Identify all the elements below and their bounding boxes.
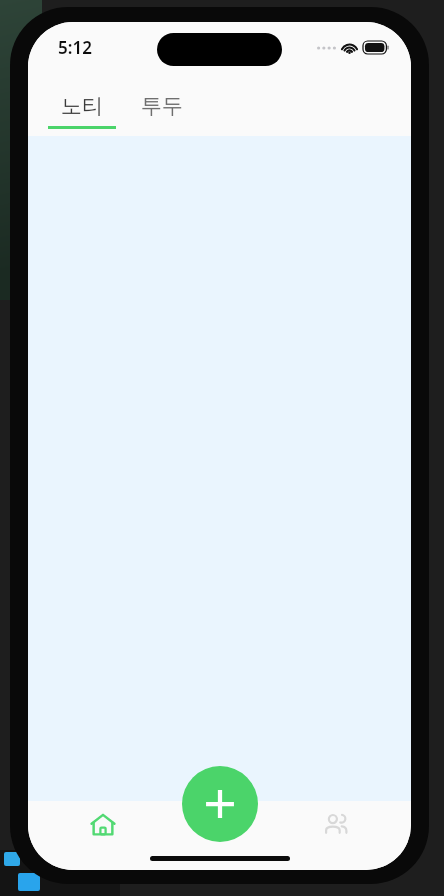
button[interactable]: Friends	[313, 802, 359, 848]
button[interactable]: Add	[182, 766, 258, 842]
staticText: 5:12	[58, 36, 92, 59]
staticText: 투두	[141, 93, 183, 119]
button[interactable]: 노티	[48, 87, 116, 136]
button[interactable]: Home	[80, 802, 126, 848]
button[interactable]: 투두	[128, 87, 196, 136]
staticText: 노티	[61, 93, 103, 119]
